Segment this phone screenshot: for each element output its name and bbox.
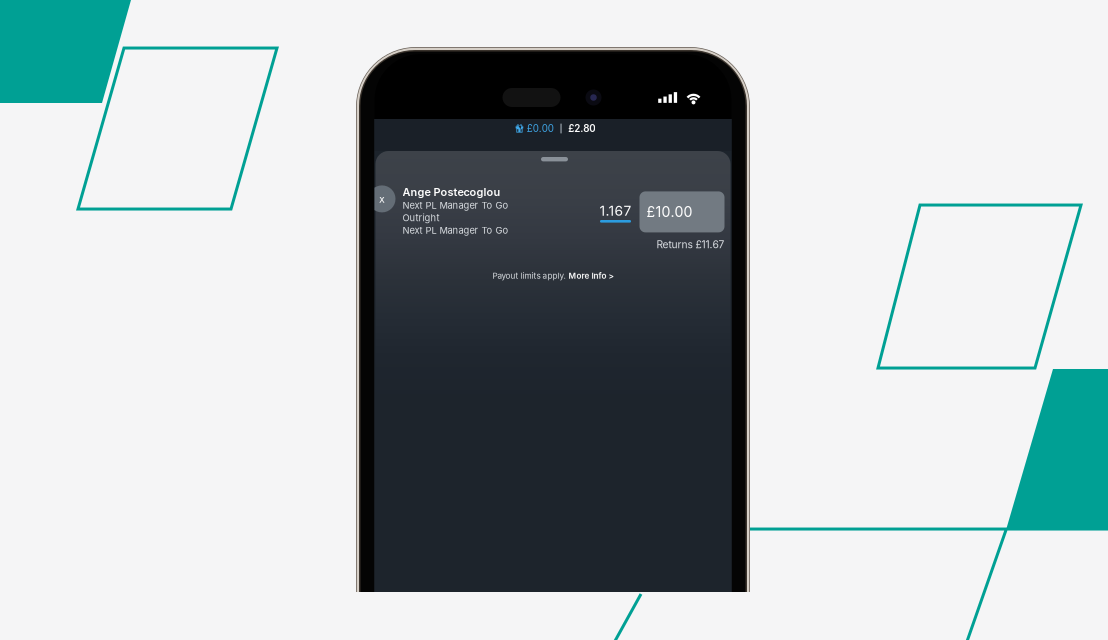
staticText: £10.00 bbox=[646, 203, 692, 220]
staticText: Payout limits apply. bbox=[492, 271, 565, 281]
staticText: x bbox=[379, 192, 385, 205]
staticText: Outright bbox=[402, 212, 439, 224]
staticText: £2.80 bbox=[568, 123, 595, 134]
staticText: Next PL Manager To Go bbox=[402, 200, 508, 211]
button[interactable]: Payout limits apply. bbox=[482, 266, 623, 286]
button[interactable]: £0.00 bbox=[513, 120, 557, 137]
staticText: £0.00 bbox=[527, 123, 554, 134]
button[interactable]: £2.80 bbox=[565, 120, 598, 137]
staticText: Ange Postecoglou bbox=[402, 185, 500, 199]
button[interactable]: Remove selection bbox=[375, 185, 395, 212]
staticText: Returns £11.67 bbox=[656, 238, 724, 251]
staticText: Next PL Manager To Go bbox=[402, 225, 508, 236]
staticText: More Info > bbox=[568, 271, 613, 281]
staticText: 1.167 bbox=[599, 202, 631, 219]
button[interactable]: £10.00 bbox=[639, 191, 724, 232]
